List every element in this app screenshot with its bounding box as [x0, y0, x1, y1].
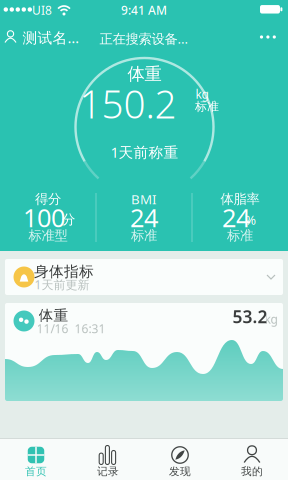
- staticText: 11/16 16:31: [36, 320, 105, 336]
- button[interactable]: 记录: [72, 439, 144, 480]
- staticText: BMI: [131, 190, 157, 208]
- staticText: %: [245, 211, 256, 228]
- staticText: 测试名…: [22, 28, 79, 47]
- button[interactable]: 体重: [5, 303, 283, 401]
- button[interactable]: 我的: [216, 439, 288, 480]
- staticText: 9:41 AM: [121, 2, 167, 18]
- staticText: 首页: [25, 465, 47, 478]
- staticText: 体脂率: [220, 191, 259, 207]
- staticText: 标准: [195, 99, 219, 114]
- button[interactable]: 发现: [144, 439, 216, 480]
- staticText: 分: [62, 211, 75, 228]
- staticText: 体重: [127, 63, 161, 85]
- staticText: 标准型: [28, 227, 67, 244]
- staticText: 100: [23, 201, 65, 234]
- staticText: 标准: [227, 227, 253, 244]
- staticText: 得分: [35, 191, 61, 207]
- staticText: 身体指标: [34, 262, 94, 280]
- staticText: 53.2: [232, 305, 267, 328]
- staticText: 24: [130, 201, 158, 234]
- button[interactable]: 首页: [0, 439, 72, 480]
- staticText: 标准: [131, 227, 157, 244]
- button[interactable]: 测试名…: [4, 28, 79, 47]
- button[interactable]: 身体指标: [5, 259, 283, 295]
- staticText: kg: [195, 86, 208, 102]
- staticText: 150.2: [79, 78, 176, 129]
- staticText: kg: [264, 311, 277, 327]
- staticText: 发现: [169, 465, 191, 478]
- staticText: 体重: [38, 306, 68, 324]
- staticText: 1天前称重: [110, 142, 178, 162]
- button[interactable]: More: [259, 34, 276, 40]
- staticText: UI8: [32, 2, 52, 18]
- staticText: 记录: [97, 465, 119, 478]
- staticText: 正在搜索设备…: [99, 30, 188, 47]
- staticText: 我的: [241, 465, 263, 478]
- staticText: 24: [222, 201, 250, 234]
- staticText: 1天前更新: [34, 276, 89, 292]
